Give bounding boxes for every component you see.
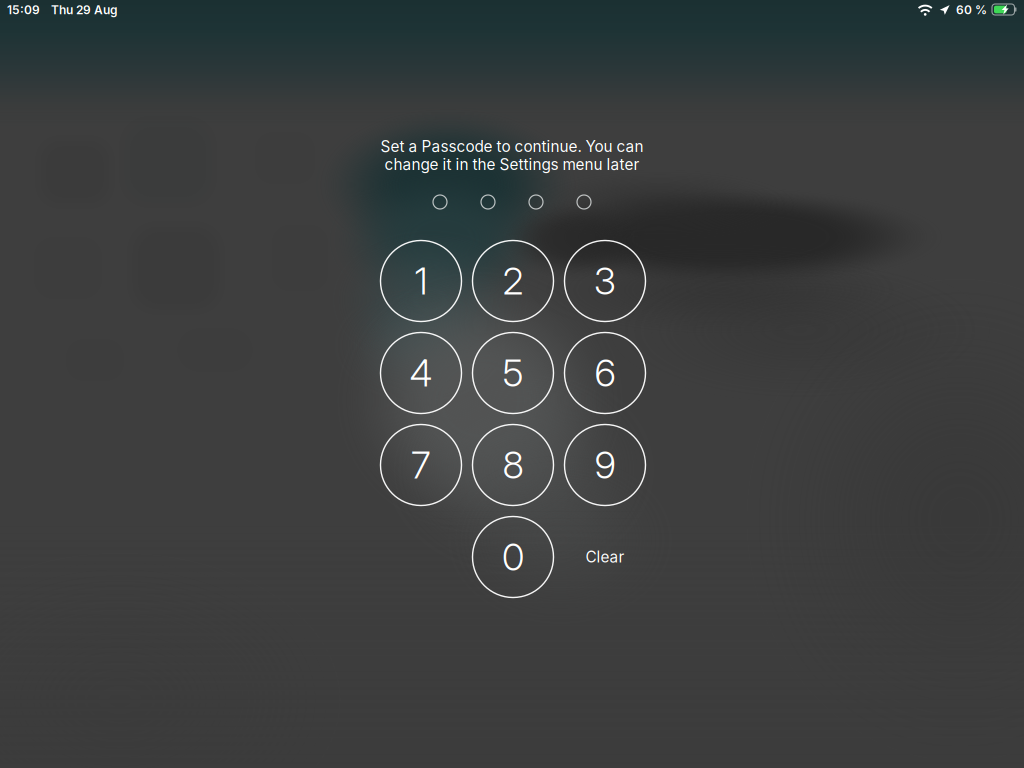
button[interactable]: 6	[564, 332, 645, 413]
staticText: 7	[411, 442, 431, 488]
staticText: 5	[502, 350, 523, 396]
button[interactable]: 7	[380, 424, 461, 505]
staticText: change it in the Settings menu later	[384, 155, 639, 174]
button[interactable]: 3	[564, 240, 645, 321]
staticText: 6	[594, 350, 615, 396]
button[interactable]: 5	[472, 332, 553, 413]
staticText: 8	[502, 442, 523, 488]
button[interactable]: 9	[564, 424, 645, 505]
staticText: 9	[594, 442, 615, 488]
button[interactable]: 0	[472, 516, 553, 597]
staticText: 0	[502, 534, 524, 580]
staticText: 1	[414, 258, 427, 304]
button[interactable]: 4	[380, 332, 461, 413]
staticText: 60 %	[956, 3, 987, 17]
staticText: 15:09	[7, 3, 40, 17]
button[interactable]: Clear	[564, 516, 645, 597]
button[interactable]: 8	[472, 424, 553, 505]
staticText: Thu 29 Aug	[51, 3, 118, 17]
staticText: Set a Passcode to continue. You can	[380, 137, 643, 156]
staticText: Clear	[585, 548, 624, 566]
staticText: 2	[502, 258, 523, 304]
staticText: 3	[594, 258, 616, 304]
staticText: 4	[409, 350, 432, 396]
button[interactable]: 1	[380, 240, 461, 321]
button[interactable]: 2	[472, 240, 553, 321]
